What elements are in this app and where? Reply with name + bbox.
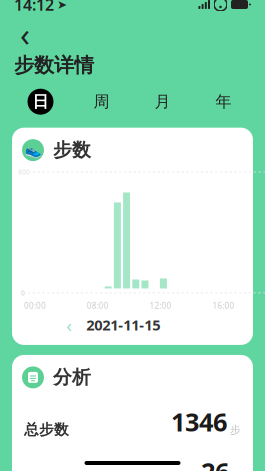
staticText: 年 <box>215 92 231 111</box>
button[interactable]: 月 <box>132 88 193 116</box>
button[interactable]: 返回 <box>0 21 42 47</box>
button[interactable]: 日 <box>10 88 71 116</box>
staticText: ‹ <box>20 13 30 55</box>
staticText: 08:00 <box>87 300 109 311</box>
staticText: 26 <box>201 454 229 471</box>
staticText: 12:00 <box>150 300 172 311</box>
staticText: ‹ <box>66 312 72 337</box>
staticText: 0 <box>21 288 25 297</box>
staticText: 800 <box>18 168 30 176</box>
button[interactable]: 前一天 <box>58 315 80 335</box>
staticText: 步数 <box>53 139 91 162</box>
staticText: 总步数 <box>24 420 69 438</box>
staticText: 步数详情 <box>14 53 94 78</box>
staticText: 16:00 <box>212 300 234 311</box>
staticText: ➤ <box>57 0 67 11</box>
staticText: 日 <box>32 92 48 111</box>
staticText: 00:00 <box>24 300 46 311</box>
button[interactable]: 年 <box>193 88 254 116</box>
staticText: 2021-11-15 <box>86 315 160 335</box>
staticText: 1346 <box>171 405 227 438</box>
staticText: 分析 <box>53 366 91 389</box>
button[interactable]: 周 <box>71 88 132 116</box>
staticText: 14:12 <box>14 0 54 15</box>
staticText: 月 <box>154 92 170 111</box>
staticText: 步 <box>230 423 241 436</box>
staticText: 👟 <box>24 142 41 158</box>
staticText: 周 <box>93 92 109 111</box>
